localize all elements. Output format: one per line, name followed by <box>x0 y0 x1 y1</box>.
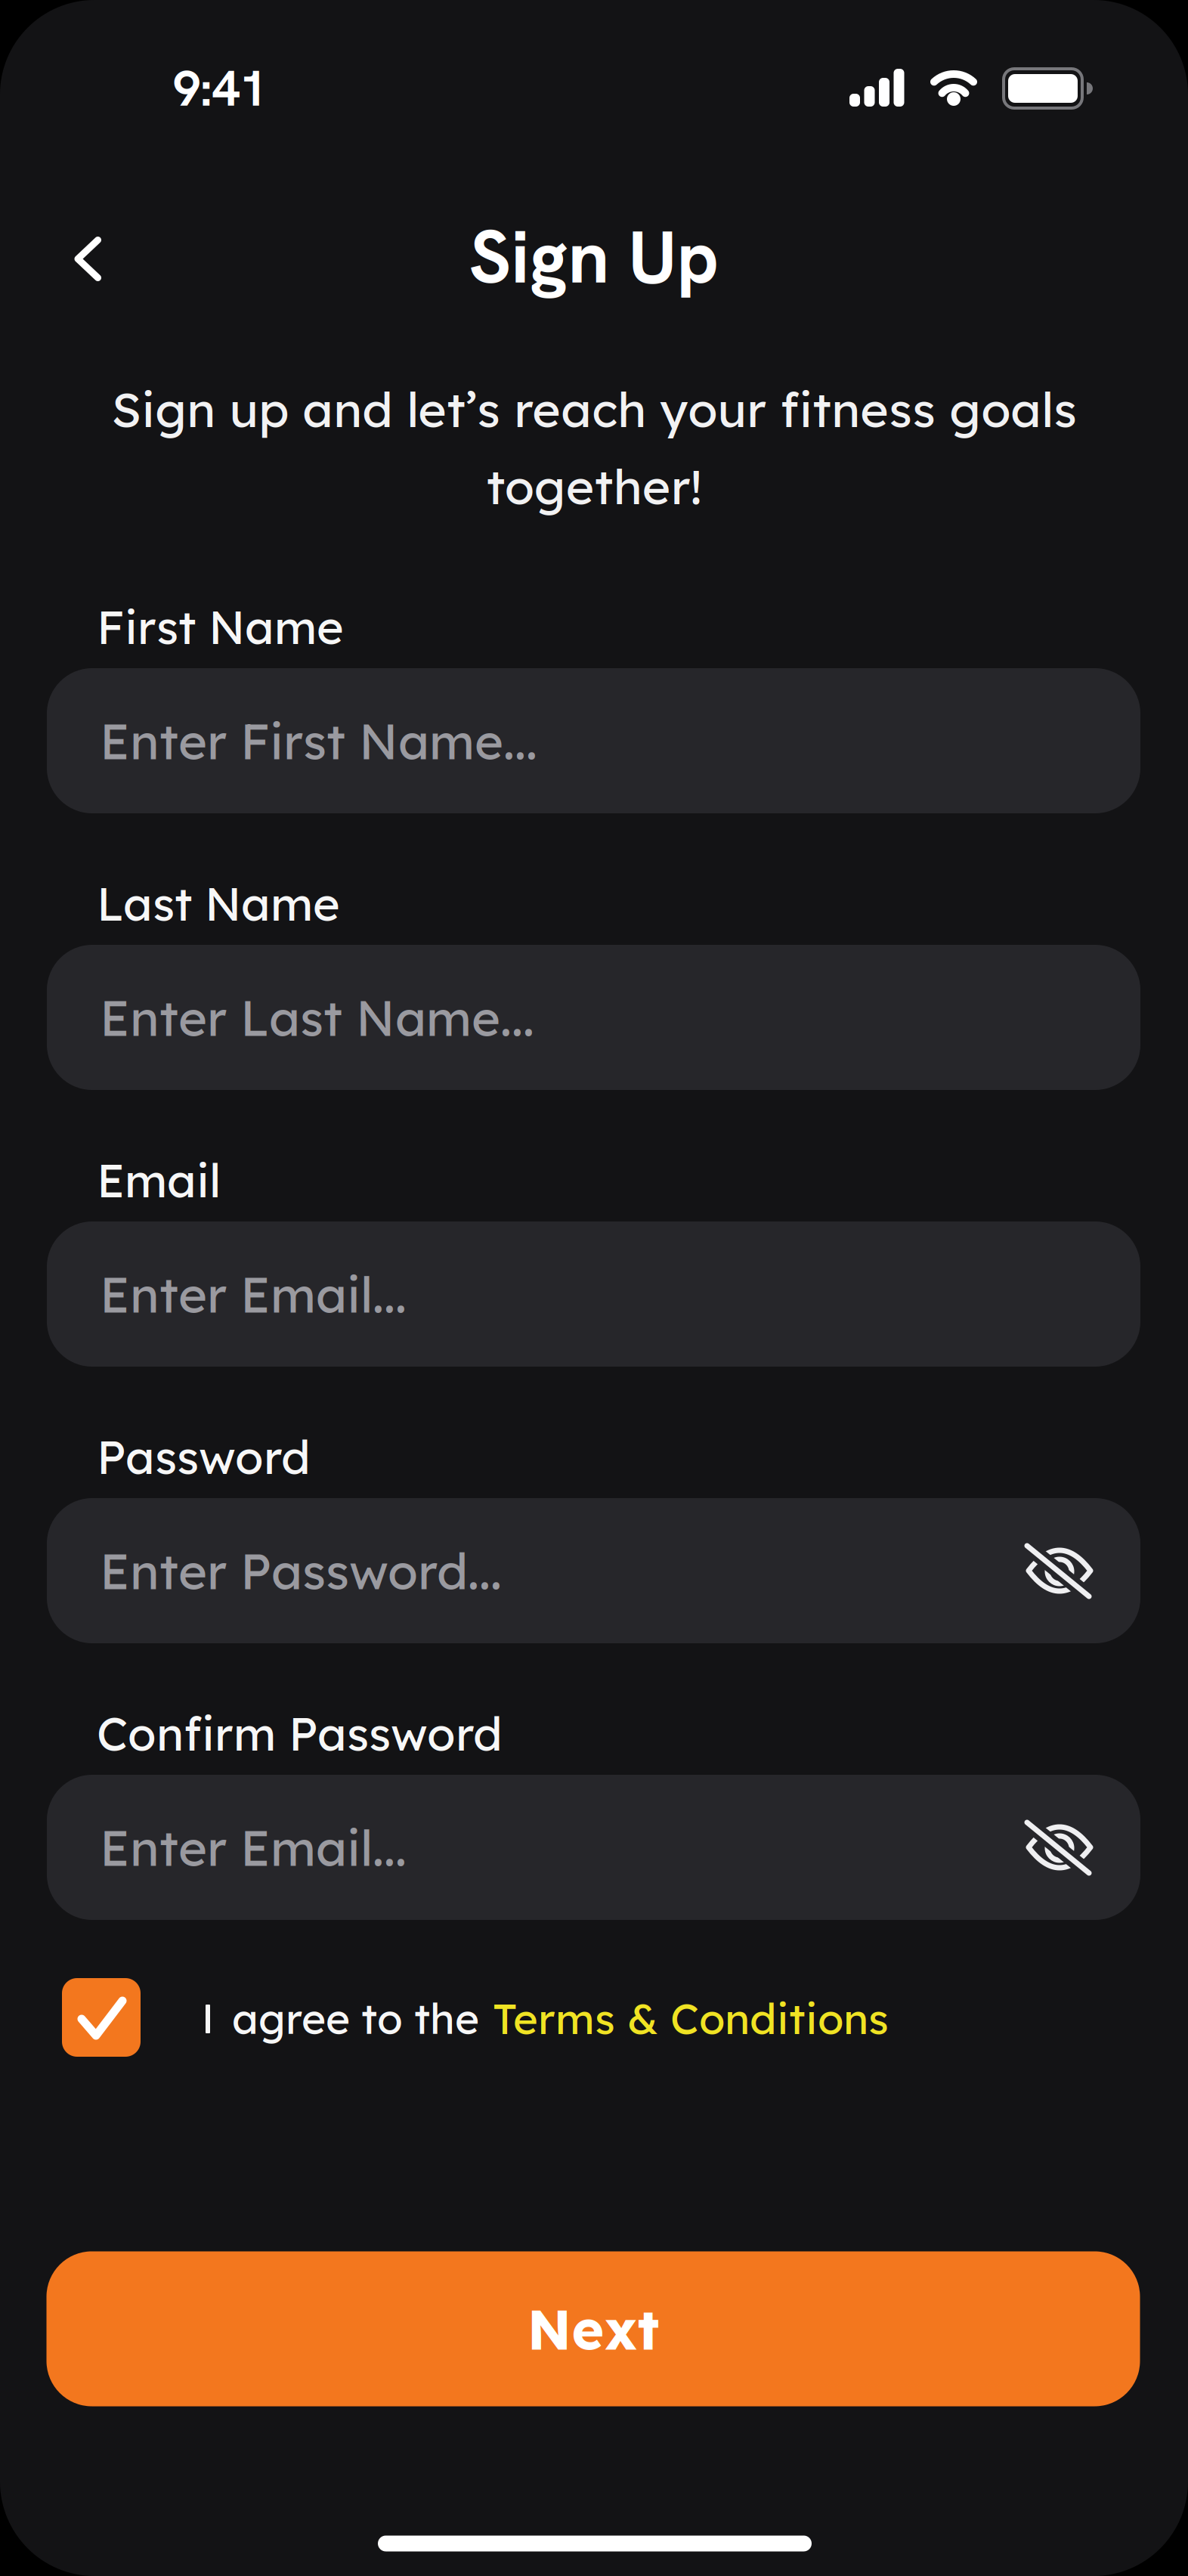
button[interactable]: Enter First Name... <box>47 668 1140 813</box>
button[interactable]: Next <box>46 2251 1140 2406</box>
button[interactable] <box>62 1978 141 2057</box>
button[interactable]: Enter Email... <box>47 1775 1140 1920</box>
button[interactable]: Enter Password... <box>47 1498 1140 1643</box>
staticText: Enter First Name... <box>100 710 537 771</box>
staticText: Enter Email... <box>100 1263 407 1325</box>
staticText: Enter Email... <box>100 1817 407 1878</box>
staticText: 9:41 <box>173 56 267 120</box>
staticText: Terms & Conditions <box>493 1992 889 2045</box>
button[interactable]: Enter Last Name... <box>47 945 1140 1090</box>
staticText: Email <box>97 1151 221 1209</box>
staticText: Last Name <box>97 874 340 932</box>
button[interactable] <box>1014 1802 1105 1893</box>
staticText: Password <box>97 1428 311 1485</box>
staticText: Sign up and let’s reach your fitness goa… <box>111 379 1077 516</box>
staticText: First Name <box>97 598 344 655</box>
button[interactable]: Enter Email... <box>47 1221 1140 1367</box>
staticText: Enter Password... <box>100 1540 502 1601</box>
staticText: Confirm Password <box>97 1704 503 1762</box>
button[interactable] <box>1014 1525 1105 1616</box>
staticText: Enter Last Name... <box>100 987 534 1048</box>
staticText: Next <box>527 2294 659 2363</box>
staticText: Sign Up <box>469 209 719 305</box>
button[interactable] <box>58 229 117 288</box>
staticText: agree to the <box>232 1992 479 2044</box>
button[interactable]: Terms & Conditions <box>493 1992 889 2045</box>
